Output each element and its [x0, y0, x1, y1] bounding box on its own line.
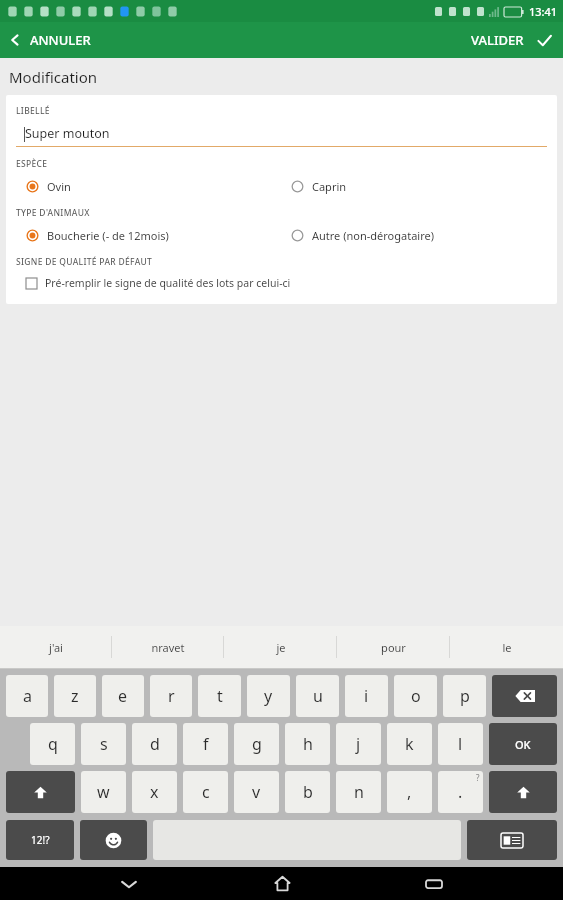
- button[interactable]: Caprin: [281, 176, 547, 197]
- button[interactable]: x: [132, 771, 177, 813]
- staticText: x: [150, 781, 159, 803]
- button[interactable]: e: [102, 675, 144, 717]
- button[interactable]: g: [234, 723, 279, 765]
- staticText: i: [364, 685, 369, 707]
- button[interactable]: t: [198, 675, 241, 717]
- button[interactable]: y: [247, 675, 290, 717]
- staticText: j: [356, 733, 361, 755]
- staticText: j'ai: [49, 640, 63, 655]
- button[interactable]: a: [6, 675, 48, 717]
- button[interactable]: Emoji: [80, 820, 147, 860]
- button[interactable]: Shift: [489, 771, 557, 813]
- staticText: c: [202, 781, 210, 803]
- staticText: OK: [515, 737, 531, 752]
- button[interactable]: je: [224, 626, 337, 668]
- button[interactable]: Boucherie (- de 12mois): [16, 225, 281, 246]
- staticText: ESPÈCE: [16, 158, 48, 170]
- staticText: SIGNE DE QUALITÉ PAR DÉFAUT: [16, 256, 153, 268]
- staticText: y: [264, 685, 273, 707]
- staticText: Pré-remplir le signe de qualité des lots…: [45, 276, 291, 290]
- staticText: f: [203, 733, 209, 755]
- staticText: n: [354, 781, 364, 803]
- button[interactable]: u: [296, 675, 339, 717]
- staticText: 13:41: [529, 4, 558, 19]
- button[interactable]: VALIDER: [459, 25, 563, 55]
- staticText: d: [150, 733, 160, 755]
- button[interactable]: le: [450, 626, 563, 668]
- staticText: l: [458, 733, 463, 755]
- staticText: a: [23, 685, 32, 707]
- staticText: Caprin: [312, 179, 347, 194]
- staticText: q: [48, 733, 58, 755]
- staticText: g: [252, 733, 262, 755]
- staticText: b: [303, 781, 313, 803]
- staticText: p: [460, 685, 470, 707]
- button[interactable]: Home: [258, 867, 306, 900]
- button[interactable]: v: [234, 771, 279, 813]
- button[interactable]: n: [336, 771, 381, 813]
- button[interactable]: OK: [489, 723, 557, 765]
- button[interactable]: z: [54, 675, 96, 717]
- staticText: LIBELLÉ: [16, 105, 50, 117]
- staticText: w: [97, 781, 110, 803]
- staticText: ,: [407, 781, 412, 803]
- button[interactable]: nravet: [112, 626, 224, 668]
- button[interactable]: h: [285, 723, 330, 765]
- button[interactable]: d: [132, 723, 177, 765]
- staticText: Super mouton: [25, 125, 110, 142]
- button[interactable]: w: [81, 771, 126, 813]
- staticText: le: [502, 640, 512, 655]
- button[interactable]: p: [443, 675, 486, 717]
- button[interactable]: s: [81, 723, 126, 765]
- staticText: h: [303, 733, 313, 755]
- button[interactable]: Autre (non-dérogataire): [281, 225, 547, 246]
- staticText: 12!?: [31, 833, 50, 847]
- staticText: t: [217, 685, 223, 707]
- staticText: ?: [476, 772, 480, 783]
- button[interactable]: Shift: [6, 771, 75, 813]
- staticText: e: [118, 685, 128, 707]
- staticText: pour: [381, 640, 406, 655]
- staticText: ANNULER: [30, 31, 91, 49]
- staticText: je: [276, 640, 286, 655]
- staticText: k: [405, 733, 414, 755]
- staticText: Autre (non-dérogataire): [312, 228, 434, 243]
- button[interactable]: j: [336, 723, 381, 765]
- button[interactable]: j'ai: [0, 626, 112, 668]
- staticText: TYPE D'ANIMAUX: [16, 207, 90, 219]
- staticText: Ovin: [47, 179, 71, 194]
- button[interactable]: .: [438, 771, 483, 813]
- staticText: z: [71, 685, 79, 707]
- staticText: Boucherie (- de 12mois): [47, 228, 169, 243]
- button[interactable]: f: [183, 723, 228, 765]
- button[interactable]: k: [387, 723, 432, 765]
- staticText: o: [411, 685, 421, 707]
- staticText: nravet: [151, 640, 185, 655]
- staticText: v: [252, 781, 261, 803]
- button[interactable]: pour: [337, 626, 450, 668]
- staticText: r: [168, 685, 175, 707]
- staticText: VALIDER: [471, 31, 524, 49]
- button[interactable]: l: [438, 723, 483, 765]
- staticText: u: [313, 685, 323, 707]
- button[interactable]: Pré-remplir le signe de qualité des lots…: [16, 274, 295, 294]
- button[interactable]: Symbols: [6, 820, 74, 860]
- button[interactable]: Hide keyboard: [105, 867, 153, 900]
- button[interactable]: c: [183, 771, 228, 813]
- staticText: Modification: [9, 67, 98, 87]
- button[interactable]: b: [285, 771, 330, 813]
- staticText: .: [458, 781, 463, 803]
- button[interactable]: i: [345, 675, 388, 717]
- button[interactable]: Backspace: [492, 675, 557, 717]
- button[interactable]: Keyboard settings: [467, 820, 557, 860]
- button[interactable]: ANNULER: [0, 25, 103, 55]
- button[interactable]: Super mouton: [16, 125, 547, 147]
- button[interactable]: r: [150, 675, 192, 717]
- button[interactable]: Recent apps: [410, 867, 458, 900]
- button[interactable]: ,: [387, 771, 432, 813]
- button[interactable]: Ovin: [16, 176, 281, 197]
- button[interactable]: o: [394, 675, 437, 717]
- staticText: s: [100, 733, 108, 755]
- button[interactable]: q: [30, 723, 75, 765]
